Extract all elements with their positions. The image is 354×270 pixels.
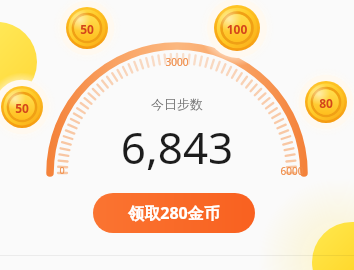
staticText: 6000 <box>272 164 312 178</box>
staticText: 3000 <box>157 55 197 69</box>
staticText: 0 <box>55 164 69 178</box>
staticText: 100 <box>207 21 267 38</box>
staticText: 6,843 <box>87 117 267 175</box>
staticText: 今日步数 <box>127 96 227 116</box>
staticText: 80 <box>296 95 354 112</box>
staticText: 50 <box>0 100 52 117</box>
staticText: 50 <box>57 21 117 38</box>
staticText: 领取280金币 <box>128 202 220 224</box>
button[interactable]: 领取280金币 <box>93 193 255 233</box>
